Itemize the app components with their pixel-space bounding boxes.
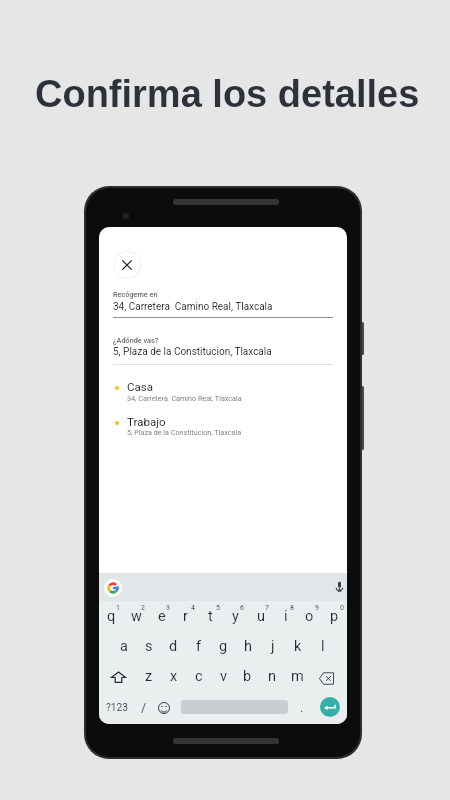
button[interactable]: .	[294, 693, 310, 722]
staticText: l	[321, 638, 325, 655]
staticText: 6	[240, 604, 244, 612]
button[interactable]: Shift	[99, 662, 136, 691]
button[interactable]: Enter	[320, 697, 340, 717]
button[interactable]: v	[211, 662, 236, 691]
button[interactable]: n	[260, 662, 285, 691]
staticText: Casa	[127, 380, 154, 394]
button[interactable]: t	[198, 602, 223, 631]
button[interactable]: y	[223, 602, 248, 631]
button[interactable]: l	[310, 632, 335, 661]
button[interactable]: q	[99, 602, 124, 631]
staticText: w	[131, 608, 142, 625]
button[interactable]: o	[297, 602, 322, 631]
button[interactable]: Voice input	[333, 581, 346, 594]
staticText: .	[300, 700, 304, 715]
button[interactable]: r	[173, 602, 198, 631]
staticText: v	[220, 668, 228, 685]
staticText: 5, Plaza de la Constitucion, Tlaxcala	[113, 346, 272, 358]
staticText: b	[243, 668, 252, 685]
staticText: f	[196, 638, 202, 655]
button[interactable]: ?123	[104, 693, 130, 722]
staticText: s	[145, 638, 153, 655]
button[interactable]: Trabajo	[99, 411, 347, 439]
button[interactable]: p	[322, 602, 347, 631]
staticText: 4	[191, 604, 195, 612]
staticText: o	[305, 608, 314, 625]
button[interactable]: h	[235, 632, 260, 661]
button[interactable]: c	[186, 662, 211, 691]
staticText: c	[195, 668, 203, 685]
staticText: 8	[290, 604, 294, 612]
button[interactable]: d	[161, 632, 186, 661]
button[interactable]: Google	[104, 579, 122, 597]
button[interactable]: Close	[113, 251, 141, 279]
button[interactable]: x	[161, 662, 186, 691]
button[interactable]: f	[186, 632, 211, 661]
staticText: ?123	[106, 702, 128, 714]
staticText: 9	[315, 604, 319, 612]
staticText: x	[170, 668, 178, 685]
button[interactable]: m	[285, 662, 310, 691]
button[interactable]: u	[248, 602, 273, 631]
staticText: u	[257, 608, 265, 625]
button[interactable]: k	[285, 632, 310, 661]
staticText: p	[330, 608, 339, 625]
staticText: 7	[265, 604, 269, 612]
staticText: a	[120, 638, 128, 655]
staticText: e	[158, 608, 166, 625]
staticText: h	[244, 638, 252, 655]
staticText: 34, Carretera Camino Real, Tlaxcala	[127, 394, 242, 402]
staticText: r	[183, 608, 188, 625]
button[interactable]: b	[235, 662, 260, 691]
staticText: n	[268, 668, 277, 685]
button[interactable]: a	[111, 632, 136, 661]
button[interactable]: Backspace	[310, 662, 347, 691]
button[interactable]: Emoji	[155, 693, 173, 722]
button[interactable]: z	[136, 662, 161, 691]
staticText: y	[232, 608, 239, 625]
staticText: 3	[166, 604, 170, 612]
staticText: Confirma los detalles	[35, 73, 420, 115]
staticText: 5, Plaza de la Constitucion, Tlaxcala	[127, 428, 242, 436]
staticText: ¿Adónde vas?	[113, 336, 159, 345]
staticText: q	[107, 608, 116, 625]
staticText: i	[284, 608, 288, 625]
staticText: /	[141, 700, 147, 715]
staticText: k	[294, 638, 302, 655]
staticText: 1	[116, 604, 120, 612]
staticText: 5	[216, 604, 220, 612]
staticText: 0	[340, 604, 344, 612]
button[interactable]: i	[273, 602, 298, 631]
button[interactable]: e	[149, 602, 174, 631]
staticText: Trabajo	[127, 415, 166, 429]
staticText: m	[291, 668, 304, 685]
staticText: z	[145, 668, 153, 685]
button[interactable]: s	[136, 632, 161, 661]
staticText: d	[169, 638, 178, 655]
staticText: g	[219, 638, 228, 655]
staticText: 34, Carretera Camino Real, Tlaxcala	[113, 301, 273, 313]
button[interactable]: g	[211, 632, 236, 661]
staticText: Recógeme en	[113, 290, 158, 299]
staticText: 2	[141, 604, 145, 612]
button[interactable]: /	[135, 693, 153, 722]
staticText: t	[208, 608, 213, 625]
staticText: j	[271, 638, 275, 655]
button[interactable]: w	[124, 602, 149, 631]
button[interactable]: j	[260, 632, 285, 661]
button[interactable]: Casa	[99, 376, 347, 404]
